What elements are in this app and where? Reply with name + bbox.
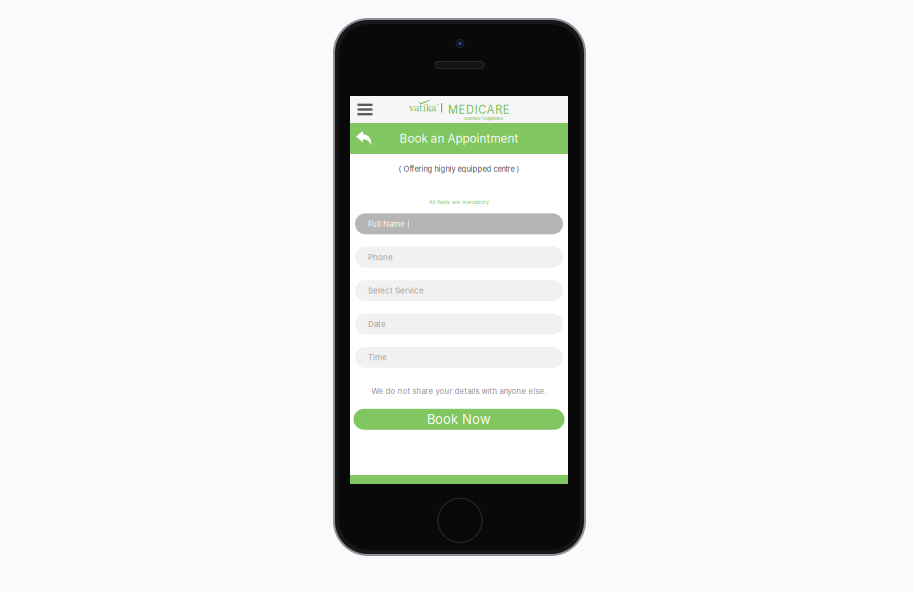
button[interactable]: Select Service bbox=[355, 280, 563, 301]
staticText: We do not share your details with anyone… bbox=[371, 386, 546, 396]
staticText: MEDICARE bbox=[448, 103, 510, 116]
staticText: Select Service bbox=[368, 286, 424, 295]
staticText: Full Name | bbox=[368, 219, 410, 229]
button[interactable]: Menu bbox=[350, 96, 376, 123]
button[interactable]: Phone bbox=[355, 247, 563, 268]
staticText: vatika bbox=[409, 103, 436, 113]
staticText: All fields are mandatory bbox=[429, 199, 489, 205]
button[interactable]: Book Now bbox=[353, 409, 564, 430]
staticText: Time bbox=[368, 353, 387, 362]
staticText: Phone bbox=[368, 252, 393, 262]
button[interactable]: Date bbox=[355, 313, 563, 334]
staticText: Book an Appointment bbox=[399, 131, 518, 146]
staticText: Book Now bbox=[427, 411, 491, 427]
staticText: ® bbox=[436, 103, 438, 107]
button[interactable]: Back bbox=[350, 123, 378, 154]
button[interactable]: Time bbox=[355, 347, 563, 368]
staticText: Date bbox=[368, 319, 386, 329]
staticText: Wellness | Diagnostics bbox=[464, 116, 503, 121]
staticText: ( Offering highly equipped centre ) bbox=[398, 164, 519, 174]
button[interactable]: Full Name | bbox=[355, 213, 563, 234]
